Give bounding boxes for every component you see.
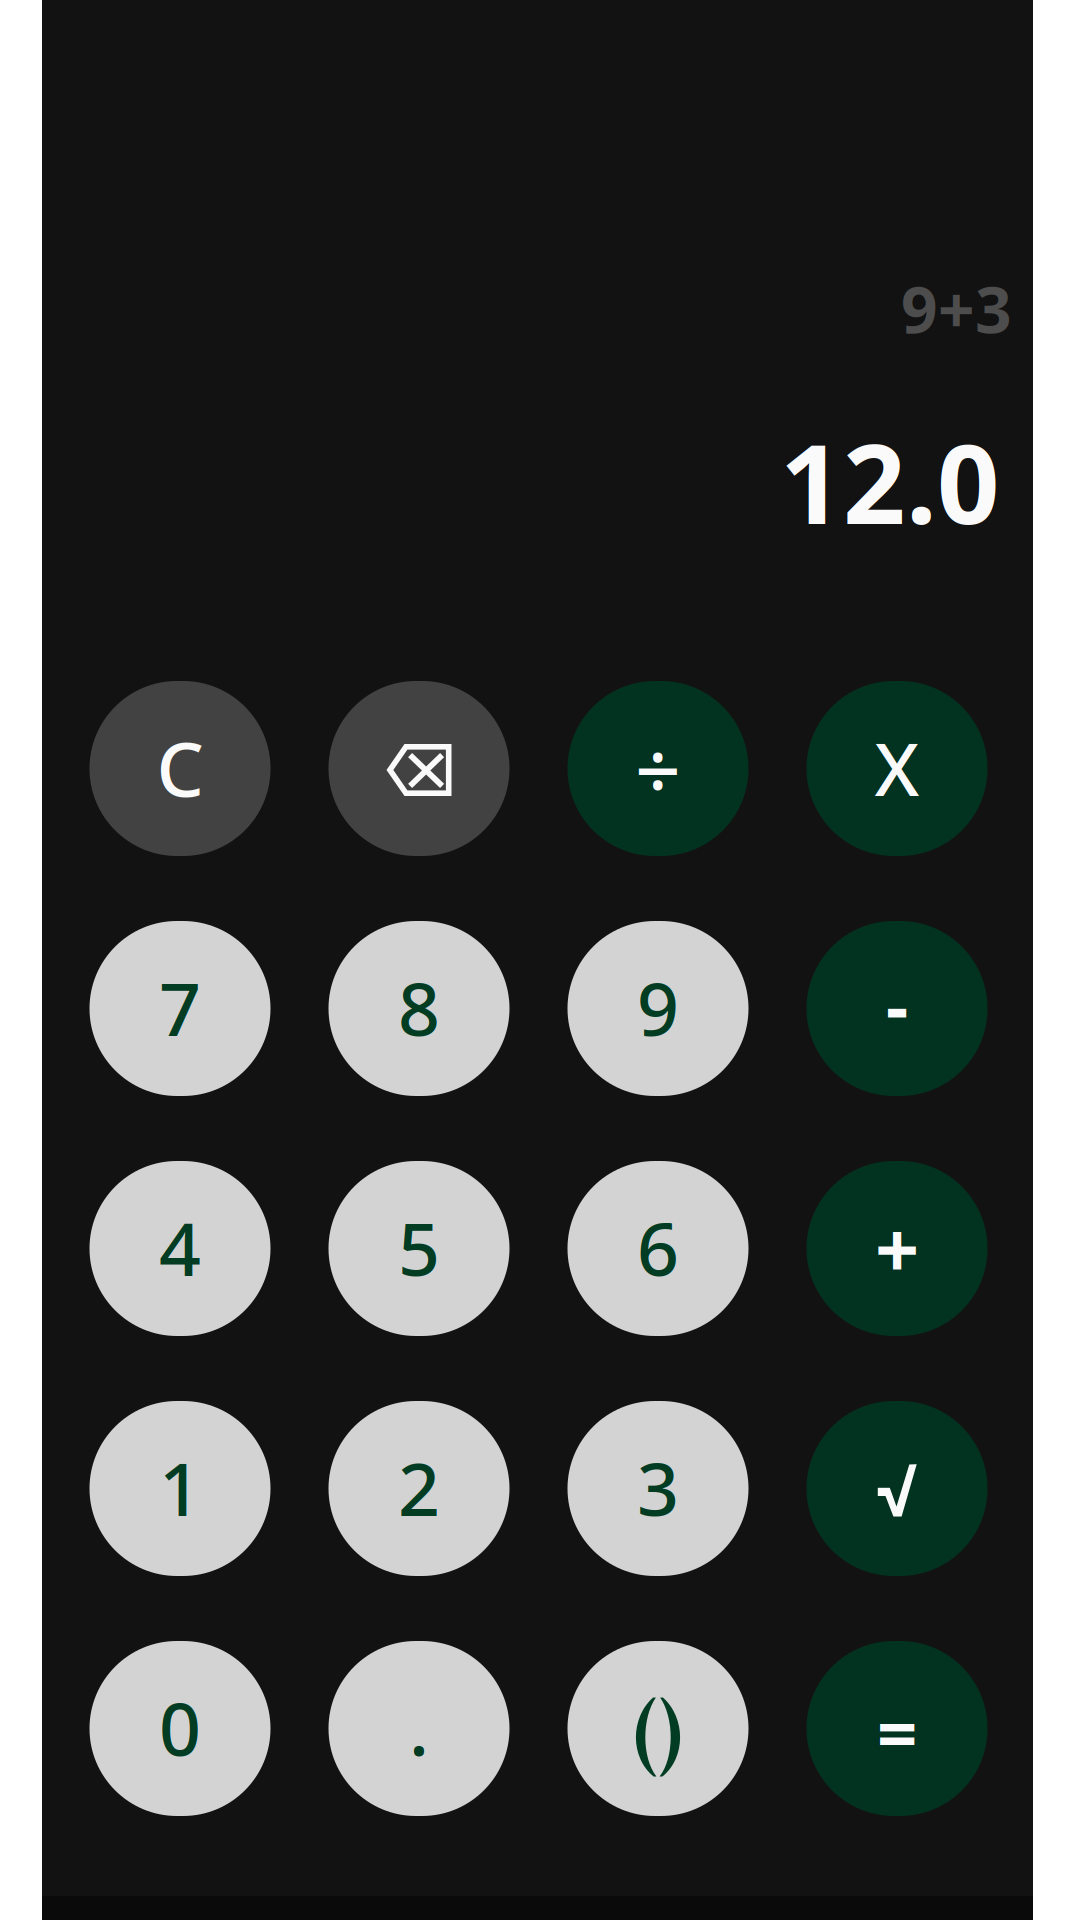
staticText: 6 (637, 1199, 679, 1296)
staticText: + (875, 1197, 919, 1300)
staticText: C (156, 718, 203, 817)
button[interactable]: 4 (89, 1161, 270, 1336)
staticText: 8 (398, 959, 440, 1056)
staticText: . (409, 1679, 429, 1776)
button[interactable]: = (806, 1641, 987, 1816)
button[interactable]: 9 (567, 921, 748, 1096)
staticText: - (886, 958, 908, 1051)
button[interactable]: ÷ (567, 681, 748, 856)
button[interactable]: 1 (89, 1401, 270, 1576)
button[interactable]: 3 (567, 1401, 748, 1576)
staticText: = (877, 1685, 917, 1778)
button[interactable]: - (806, 921, 987, 1096)
button[interactable]: 6 (567, 1161, 748, 1336)
button[interactable]: X (806, 681, 987, 856)
button[interactable]: Parentheses (567, 1641, 748, 1816)
button[interactable]: C (89, 681, 270, 856)
staticText: 12.0 (780, 409, 1000, 554)
staticText: 1 (159, 1439, 201, 1536)
staticText: ÷ (635, 715, 681, 822)
button[interactable]: . (328, 1641, 509, 1816)
staticText: 3 (637, 1439, 679, 1536)
staticText: 4 (159, 1199, 201, 1296)
staticText: 9+3 (901, 266, 1012, 351)
button[interactable]: 8 (328, 921, 509, 1096)
button[interactable]: Square root (806, 1401, 987, 1576)
staticText: 0 (159, 1679, 201, 1776)
button[interactable]: 2 (328, 1401, 509, 1576)
staticText: 5 (398, 1199, 440, 1296)
staticText: 7 (159, 959, 201, 1056)
staticText: X (874, 719, 919, 816)
staticText: 9 (637, 959, 679, 1056)
button[interactable]: 0 (89, 1641, 270, 1816)
button[interactable]: 5 (328, 1161, 509, 1336)
button[interactable]: 7 (89, 921, 270, 1096)
button[interactable]: + (806, 1161, 987, 1336)
staticText: 2 (398, 1439, 440, 1536)
button[interactable]: Backspace (328, 681, 509, 856)
